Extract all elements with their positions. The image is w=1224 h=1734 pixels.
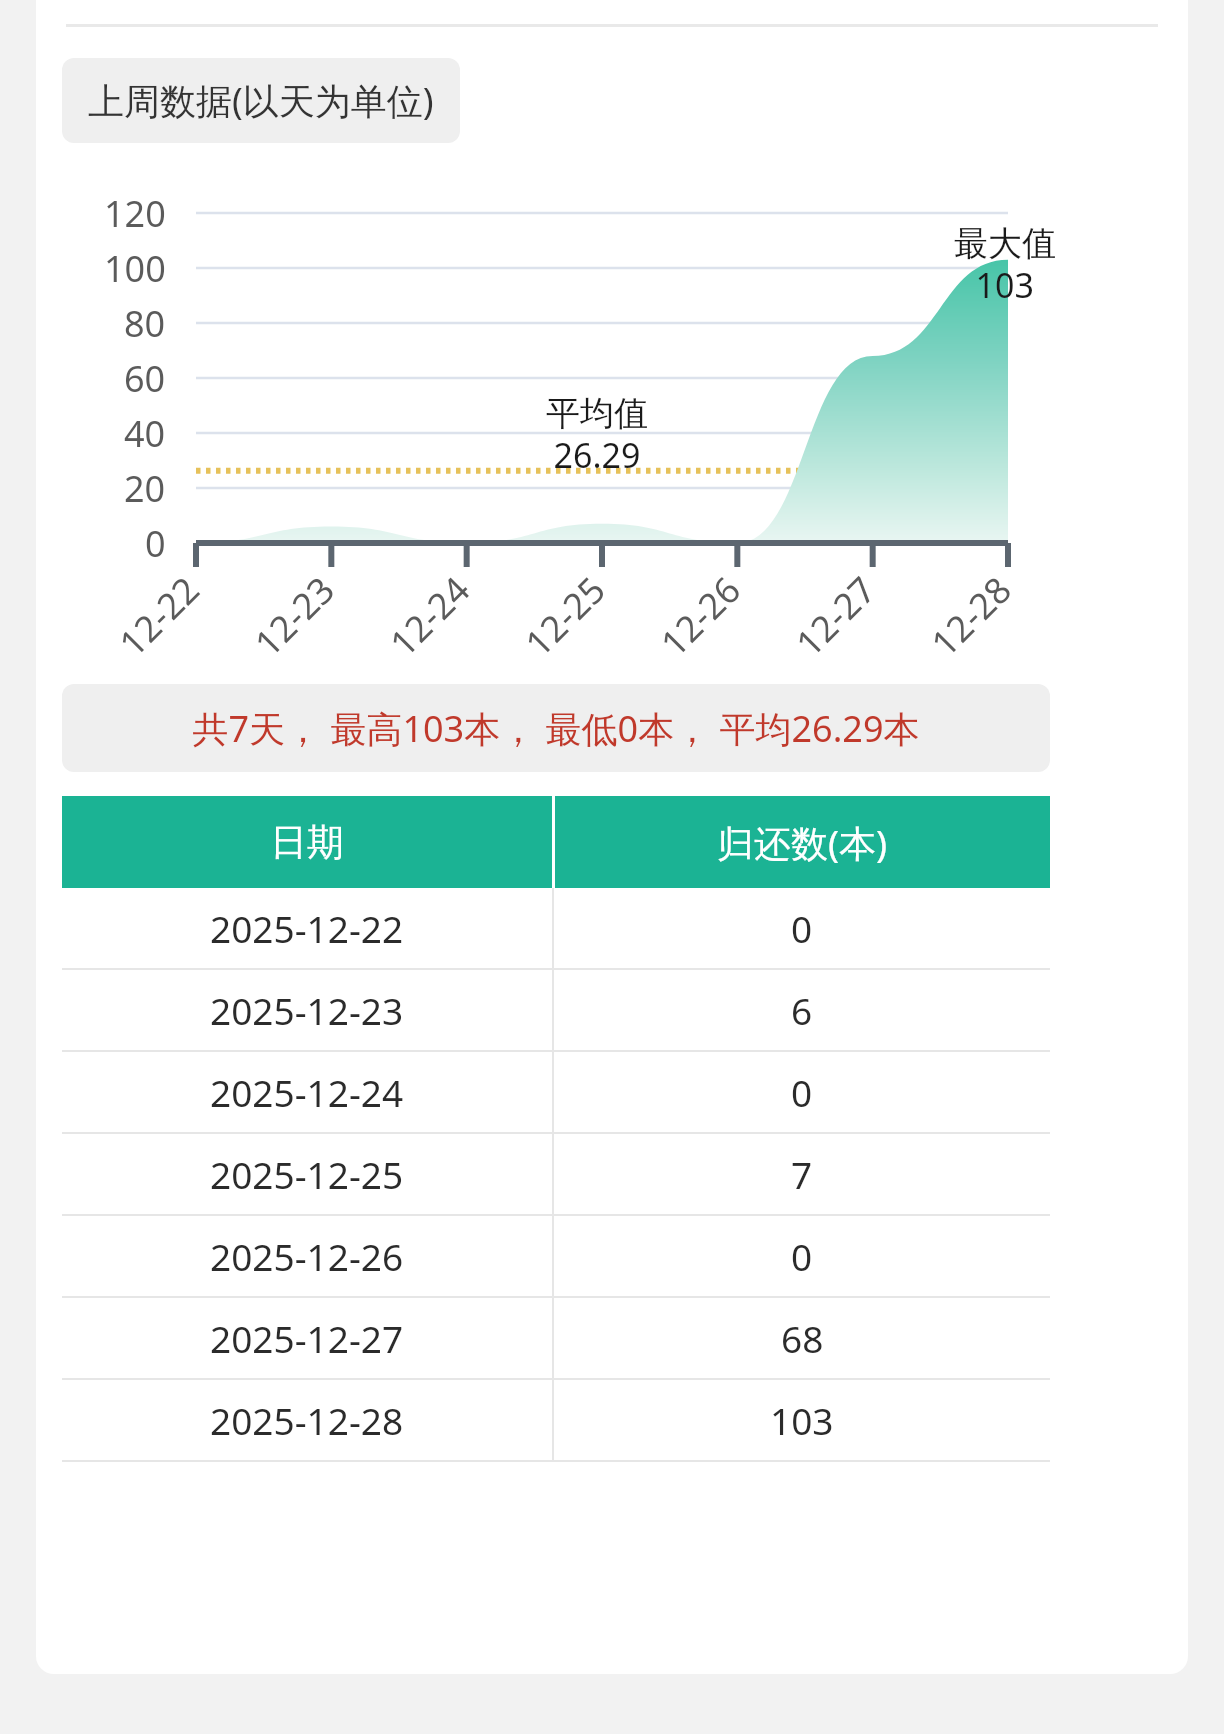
staticText: 2025-12-24 [210,1067,404,1117]
staticText: 0 [791,903,813,953]
button[interactable]: 上周数据(以天为单位) [62,58,460,143]
staticText: 2025-12-25 [210,1149,404,1199]
staticText: 0 [791,1067,813,1117]
staticText: 2025-12-23 [210,985,404,1035]
staticText: 6 [791,985,813,1035]
button[interactable]: 2025-12-23 [62,970,1050,1050]
button[interactable]: 2025-12-26 [62,1216,1050,1296]
staticText: 2025-12-22 [210,903,404,953]
button[interactable]: 2025-12-25 [62,1134,1050,1214]
staticText: 0 [791,1231,813,1281]
button[interactable]: 2025-12-28 [62,1380,1050,1460]
staticText: 日期 [270,819,344,866]
button[interactable]: 日期 [62,796,1050,888]
staticText: 7 [791,1149,813,1199]
staticText: 2025-12-28 [210,1395,404,1445]
staticText: 2025-12-26 [210,1231,404,1281]
staticText: 68 [781,1313,824,1363]
button[interactable]: 共7天， 最高103本， 最低0本， 平均26.29本 [62,684,1050,772]
staticText: 上周数据(以天为单位) [88,76,434,125]
button[interactable]: 2025-12-22 [62,888,1050,968]
staticText: 归还数(本) [717,817,888,868]
staticText: 2025-12-27 [210,1313,404,1363]
staticText: 103 [770,1395,834,1445]
staticText: 共7天， 最高103本， 最低0本， 平均26.29本 [192,704,920,753]
button[interactable]: 2025-12-27 [62,1298,1050,1378]
button[interactable]: 2025-12-24 [62,1052,1050,1132]
